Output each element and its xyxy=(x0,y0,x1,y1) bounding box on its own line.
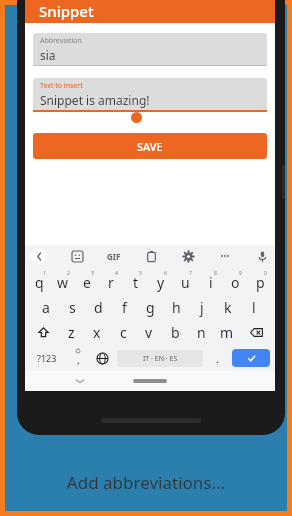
staticText: u xyxy=(181,273,190,292)
staticText: o xyxy=(231,273,240,292)
staticText: 2 xyxy=(67,270,70,277)
staticText: 5 xyxy=(139,270,142,277)
staticText: 6 xyxy=(164,270,167,277)
staticText: r xyxy=(108,273,114,292)
button[interactable]: p xyxy=(248,270,273,295)
button[interactable]: Shift xyxy=(27,320,59,345)
button[interactable]: q xyxy=(27,270,51,295)
staticText: f xyxy=(122,298,127,317)
button[interactable]: m xyxy=(214,320,240,345)
staticText: Snippet is amazing! xyxy=(40,92,150,108)
staticText: x xyxy=(93,323,101,342)
button[interactable]: IT · EN · ES xyxy=(117,350,203,367)
staticText: 7 xyxy=(189,270,192,277)
staticText: 4 xyxy=(115,270,118,277)
staticText: 8 xyxy=(214,270,217,277)
button[interactable]: w xyxy=(51,270,75,295)
button[interactable]: Stickers xyxy=(70,249,84,263)
button[interactable]: Settings xyxy=(181,249,195,263)
button[interactable] xyxy=(133,379,167,383)
staticText: h xyxy=(172,298,181,317)
button[interactable]: SAVE xyxy=(33,133,267,159)
button[interactable]: t xyxy=(123,270,148,295)
staticText: a xyxy=(42,298,50,317)
staticText: d xyxy=(94,298,103,317)
staticText: v xyxy=(145,323,153,342)
button[interactable]: y xyxy=(148,270,173,295)
staticText: y xyxy=(157,273,165,292)
button[interactable]: Enter xyxy=(232,349,270,367)
button[interactable]: Voice input xyxy=(255,249,269,263)
button[interactable]: x xyxy=(84,320,110,345)
button[interactable]: i xyxy=(198,270,223,295)
staticText: z xyxy=(68,323,75,342)
staticText: Add abbreviations... xyxy=(5,471,287,494)
button[interactable]: b xyxy=(162,320,188,345)
button[interactable]: o xyxy=(223,270,248,295)
button[interactable]: Clipboard xyxy=(144,249,158,263)
button[interactable]: h xyxy=(163,295,189,320)
staticText: g xyxy=(146,298,155,317)
button[interactable]: Back xyxy=(31,248,47,264)
staticText: l xyxy=(252,298,256,317)
staticText: 0 xyxy=(264,270,267,277)
button[interactable]: Hide keyboard xyxy=(73,374,87,388)
staticText: i xyxy=(209,273,213,292)
staticText: 1 xyxy=(43,270,46,277)
staticText: k xyxy=(224,298,232,317)
button[interactable]: f xyxy=(111,295,137,320)
staticText: c xyxy=(120,323,127,342)
staticText: q xyxy=(35,273,44,292)
button[interactable]: Change language xyxy=(90,345,115,371)
staticText: p xyxy=(256,273,265,292)
staticText: Text to insert xyxy=(40,81,83,91)
staticText: j xyxy=(200,298,204,317)
staticText: e xyxy=(83,273,91,292)
button[interactable]: GIF xyxy=(107,251,121,262)
staticText: s xyxy=(69,298,76,317)
staticText: t xyxy=(133,273,139,292)
button[interactable]: Text to insert xyxy=(33,78,267,123)
staticText: Snippet xyxy=(39,1,94,21)
staticText: IT · EN · ES xyxy=(143,354,178,364)
staticText: b xyxy=(171,323,180,342)
button[interactable]: More xyxy=(218,249,232,263)
staticText: SAVE xyxy=(137,139,163,154)
staticText: m xyxy=(220,323,234,342)
button[interactable]: z xyxy=(59,320,84,345)
button[interactable]: . xyxy=(205,345,230,371)
button[interactable]: u xyxy=(173,270,198,295)
button[interactable]: g xyxy=(137,295,163,320)
button[interactable]: k xyxy=(215,295,241,320)
button[interactable]: ?123 xyxy=(28,345,65,371)
button[interactable]: Backspace xyxy=(240,320,273,345)
staticText: w xyxy=(57,273,69,292)
button[interactable]: d xyxy=(85,295,111,320)
button[interactable]: v xyxy=(136,320,162,345)
staticText: 9 xyxy=(239,270,242,277)
button[interactable]: n xyxy=(188,320,214,345)
button[interactable]: l xyxy=(241,295,267,320)
staticText: sia xyxy=(40,47,56,63)
button[interactable]: j xyxy=(189,295,215,320)
staticText: ?123 xyxy=(37,352,57,364)
button[interactable]: r xyxy=(99,270,123,295)
button[interactable]: a xyxy=(33,295,59,320)
button[interactable]: c xyxy=(110,320,136,345)
staticText: GIF xyxy=(107,251,121,262)
staticText: 3 xyxy=(91,270,94,277)
staticText: Abbreviation xyxy=(40,36,82,46)
button[interactable]: e xyxy=(75,270,99,295)
button[interactable]: s xyxy=(59,295,85,320)
button[interactable]: Emoji comma xyxy=(65,345,90,371)
button[interactable]: Abbreviation xyxy=(33,33,267,66)
staticText: , xyxy=(77,353,80,367)
staticText: n xyxy=(197,323,206,342)
staticText: . xyxy=(216,351,219,366)
